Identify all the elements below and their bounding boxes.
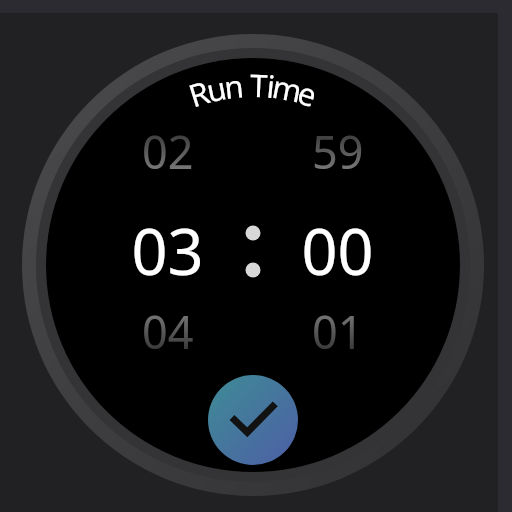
button[interactable]: Confirm run time bbox=[208, 375, 298, 465]
